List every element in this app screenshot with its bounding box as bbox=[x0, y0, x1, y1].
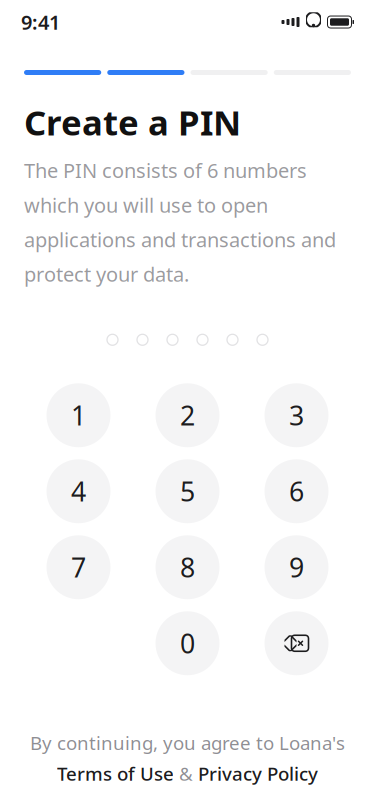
staticText: Terms of Use bbox=[57, 761, 174, 786]
staticText: 2 bbox=[180, 398, 195, 433]
staticText: 8 bbox=[180, 550, 195, 585]
staticText: 9:41 bbox=[21, 9, 60, 35]
button[interactable]: 2 bbox=[155, 383, 219, 447]
button[interactable]: 4 bbox=[46, 459, 110, 523]
staticText: 1 bbox=[71, 398, 86, 433]
button[interactable]: 5 bbox=[155, 459, 219, 523]
staticText: The PIN consists of 6 numbers which you … bbox=[24, 157, 336, 287]
staticText: 6 bbox=[289, 474, 304, 509]
button[interactable]: 1 bbox=[46, 383, 110, 447]
button[interactable]: 6 bbox=[264, 459, 328, 523]
button[interactable]: Terms of Use bbox=[57, 761, 174, 786]
staticText: 3 bbox=[289, 398, 304, 433]
button[interactable]: 7 bbox=[46, 535, 110, 599]
staticText: 0 bbox=[180, 626, 195, 661]
staticText: 4 bbox=[71, 474, 86, 509]
staticText: 7 bbox=[71, 550, 86, 585]
button[interactable]: 8 bbox=[155, 535, 219, 599]
staticText: & bbox=[179, 761, 193, 786]
staticText: Privacy Policy bbox=[198, 761, 318, 786]
button[interactable]: 9 bbox=[264, 535, 328, 599]
button[interactable]: 0 bbox=[155, 611, 219, 675]
button[interactable]: 3 bbox=[264, 383, 328, 447]
staticText: 9 bbox=[289, 550, 304, 585]
button[interactable]: Privacy Policy bbox=[198, 761, 318, 786]
staticText: By continuing, you agree to Loana's bbox=[30, 730, 345, 755]
button[interactable]: Delete bbox=[264, 611, 328, 675]
staticText: Create a PIN bbox=[24, 99, 241, 145]
staticText: 5 bbox=[180, 474, 195, 509]
